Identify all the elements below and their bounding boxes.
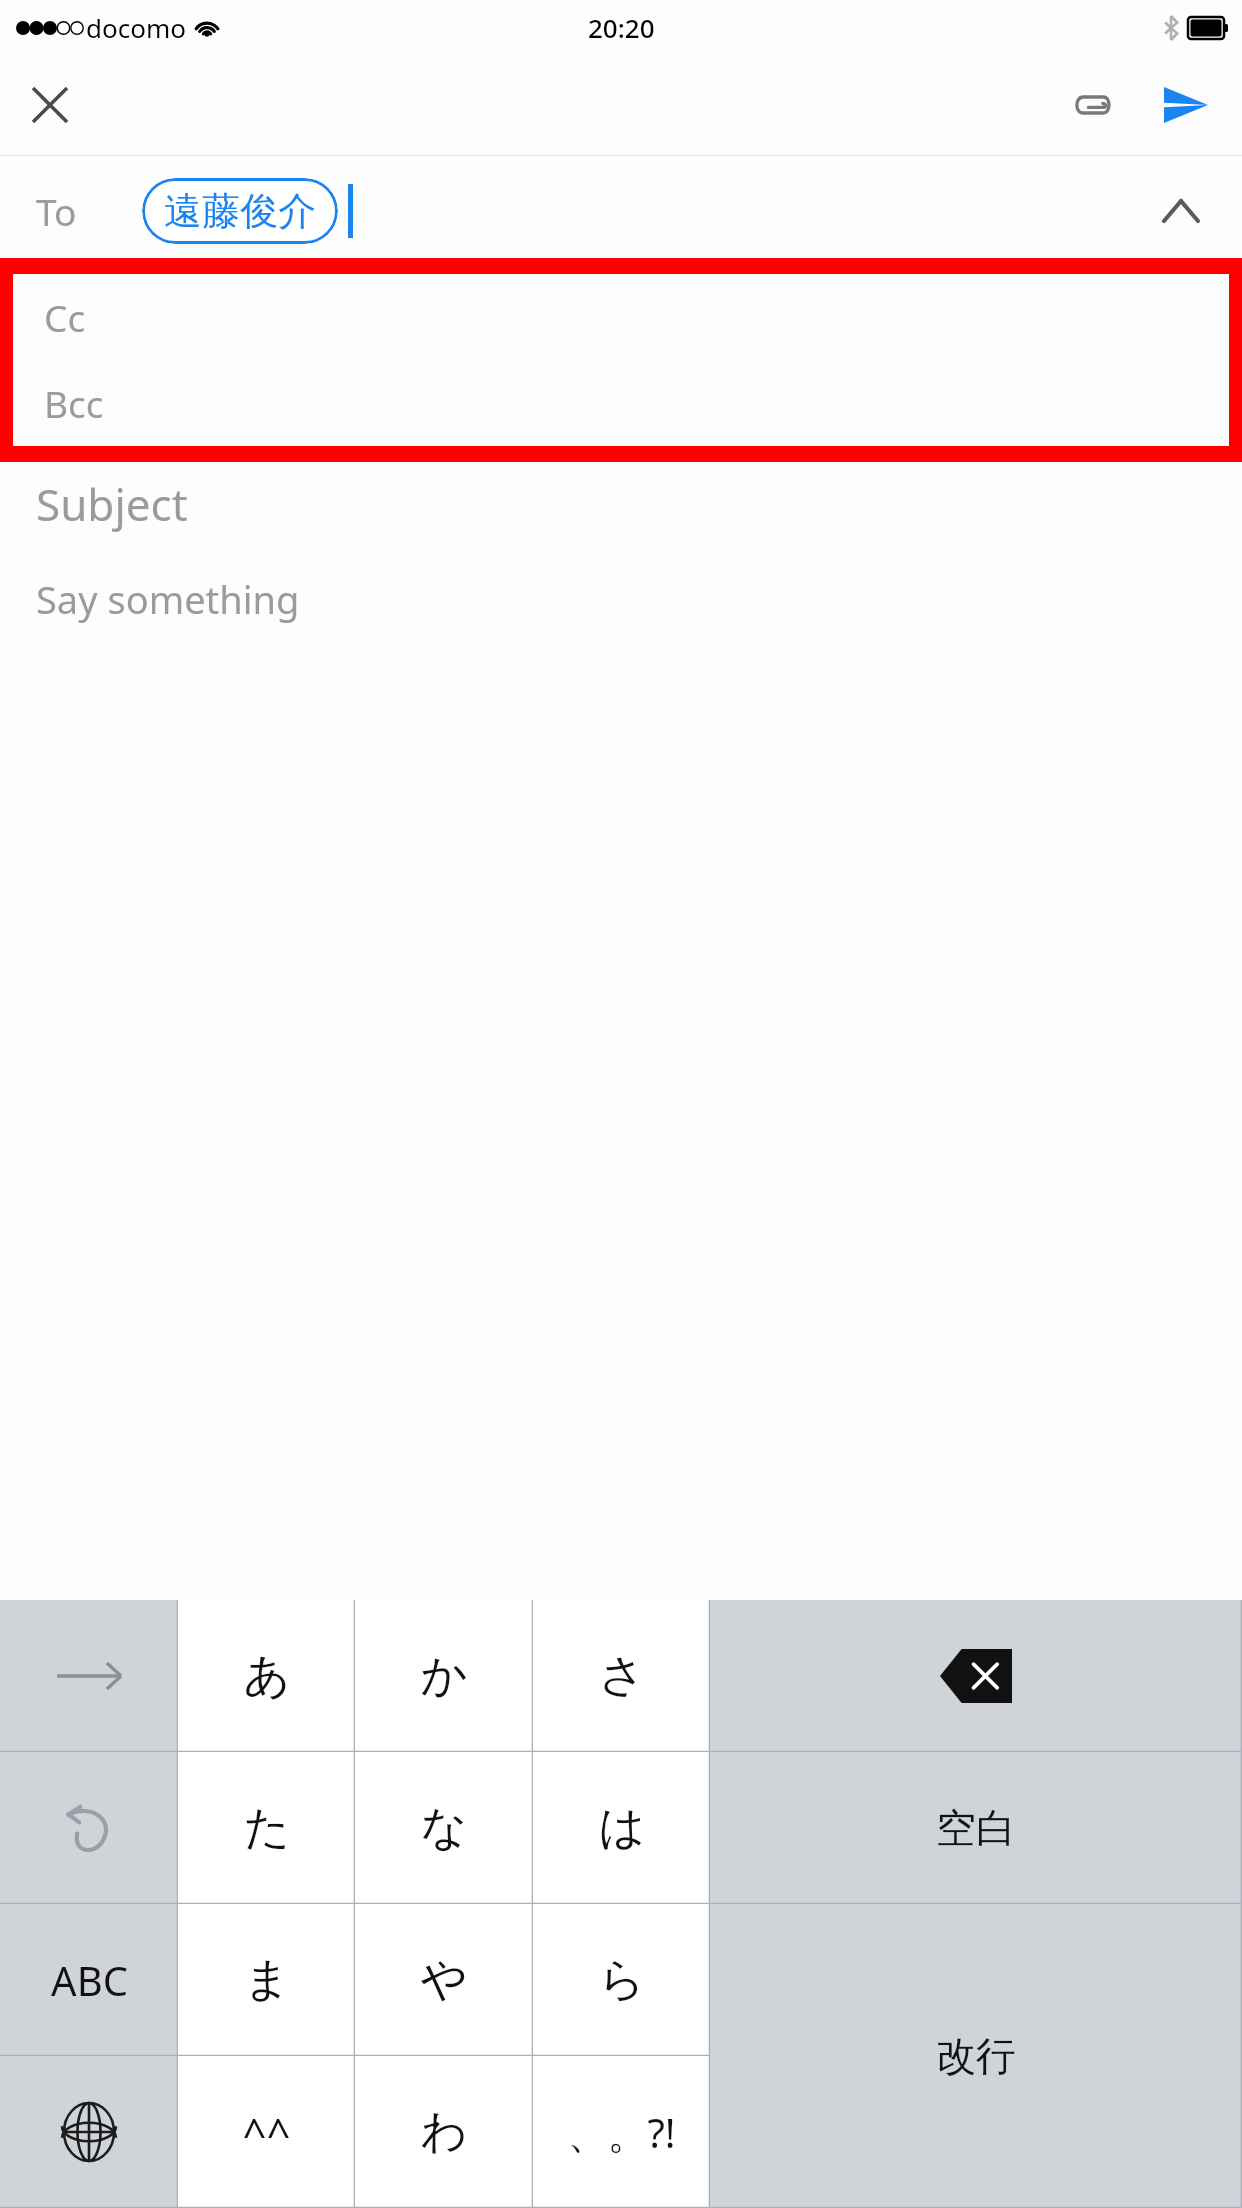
button[interactable]: は (533, 1752, 710, 1904)
button[interactable]: か (355, 1600, 533, 1752)
button[interactable]: Undo (0, 1752, 178, 1904)
staticText: な (420, 1799, 468, 1857)
staticText: 改行 (936, 2031, 1016, 2081)
button[interactable]: To (0, 156, 1242, 266)
staticText: Bcc (44, 378, 104, 428)
staticText: Subject (36, 474, 188, 534)
staticText: か (420, 1647, 468, 1705)
button[interactable]: わ (355, 2056, 533, 2208)
staticText: ^^ (242, 2104, 291, 2161)
button[interactable]: 空白 (710, 1752, 1242, 1904)
staticText: さ (598, 1647, 646, 1705)
button[interactable]: Close (14, 69, 86, 141)
button[interactable]: Next candidate (0, 1600, 178, 1752)
staticText: ま (243, 1951, 291, 2009)
staticText: 、。?! (567, 2105, 676, 2160)
staticText: To (36, 186, 77, 236)
staticText: は (598, 1799, 646, 1857)
staticText: docomo (86, 10, 186, 45)
button[interactable]: 遠藤俊介 (142, 178, 338, 244)
staticText: 遠藤俊介 (164, 187, 316, 235)
staticText: 空白 (936, 1803, 1016, 1853)
button[interactable]: Subject (0, 454, 1242, 554)
button[interactable]: 改行 (710, 1904, 1242, 2208)
button[interactable]: Say something (0, 554, 1242, 644)
button[interactable]: Collapse recipients (1146, 176, 1216, 246)
staticText: た (243, 1799, 291, 1857)
staticText: 20:20 (588, 10, 655, 45)
staticText: ABC (51, 1953, 128, 2007)
staticText: あ (243, 1647, 291, 1705)
button[interactable]: Attach file (1054, 67, 1130, 143)
button[interactable]: な (355, 1752, 533, 1904)
button[interactable]: Switch keyboard (0, 2056, 178, 2208)
button[interactable]: ら (533, 1904, 710, 2056)
button[interactable]: 、。?! (533, 2056, 710, 2208)
button[interactable]: Cc (13, 274, 1229, 360)
button[interactable]: あ (178, 1600, 355, 1752)
button[interactable]: Bcc (13, 360, 1229, 446)
staticText: Say something (36, 573, 300, 625)
button[interactable]: Delete (710, 1600, 1242, 1752)
button[interactable]: ^^ (178, 2056, 355, 2208)
staticText: や (420, 1951, 468, 2009)
staticText: Cc (44, 292, 86, 342)
button[interactable]: ABC (0, 1904, 178, 2056)
button[interactable]: さ (533, 1600, 710, 1752)
staticText: わ (420, 2103, 468, 2161)
staticText: ら (598, 1951, 646, 2009)
button[interactable]: Send (1148, 67, 1224, 143)
button[interactable]: た (178, 1752, 355, 1904)
button[interactable]: ま (178, 1904, 355, 2056)
button[interactable]: や (355, 1904, 533, 2056)
